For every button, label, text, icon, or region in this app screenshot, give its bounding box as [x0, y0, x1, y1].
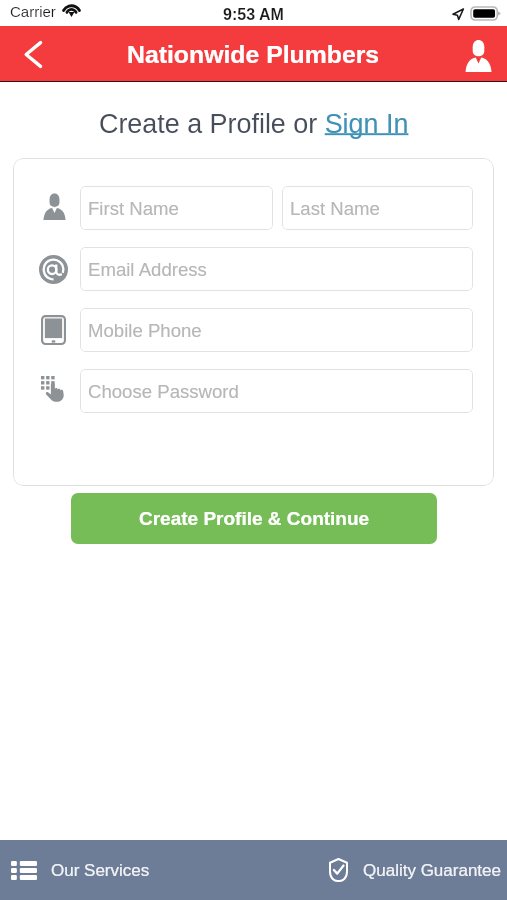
staticText: Carrier [10, 3, 56, 20]
button[interactable]: Mobile Phone [80, 308, 473, 352]
button[interactable]: Quality Guarantee [253, 840, 507, 900]
button[interactable]: Email Address [80, 247, 473, 291]
staticText: Quality Guarantee [363, 861, 501, 880]
staticText: Create Profile & Continue [139, 508, 370, 529]
staticText: Choose Password [88, 381, 239, 402]
button[interactable]: Account [455, 31, 501, 77]
staticText: 9:53 AM [223, 6, 284, 24]
staticText: Mobile Phone [88, 320, 202, 341]
staticText: Nationwide Plumbers [127, 41, 380, 69]
button[interactable]: Back [11, 32, 55, 76]
button[interactable]: Our Services [0, 840, 253, 900]
button[interactable]: First Name [80, 186, 273, 230]
button[interactable]: Create Profile & Continue [71, 493, 437, 544]
staticText: Last Name [290, 198, 380, 219]
staticText: Create a Profile or Sign In [99, 109, 409, 139]
button[interactable]: Last Name [282, 186, 473, 230]
staticText: Email Address [88, 259, 207, 280]
staticText: First Name [88, 198, 179, 219]
button[interactable]: Choose Password [80, 369, 473, 413]
staticText: Our Services [51, 861, 150, 880]
